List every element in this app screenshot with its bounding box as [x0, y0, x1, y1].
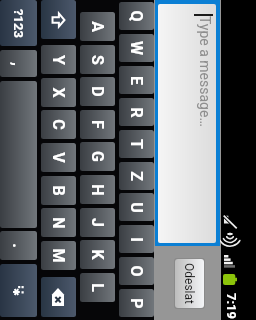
button[interactable]: Q [119, 2, 154, 30]
staticText: U [127, 202, 146, 213]
button[interactable]: F [80, 110, 115, 139]
staticText: Z [127, 171, 146, 181]
staticText: H [88, 184, 107, 196]
staticText: Type a message… [197, 16, 213, 127]
button[interactable]: G [80, 142, 115, 171]
button[interactable]: X [41, 78, 76, 107]
button[interactable]: O [119, 257, 154, 285]
staticText: P [127, 298, 146, 309]
staticText: L [88, 283, 107, 292]
button[interactable]: M [41, 241, 76, 270]
staticText: N [49, 217, 68, 229]
staticText: G [88, 151, 107, 162]
staticText: D [88, 86, 107, 97]
button[interactable]: W [119, 34, 154, 62]
button[interactable]: J [80, 208, 115, 237]
button[interactable]: I [119, 225, 154, 253]
staticText: Q [127, 10, 146, 22]
button[interactable]: , [0, 50, 37, 77]
button[interactable]: N [41, 208, 76, 237]
staticText: W [127, 41, 146, 55]
button[interactable]: H [80, 175, 115, 204]
button[interactable]: B [41, 176, 76, 205]
staticText: E [127, 76, 146, 85]
button[interactable]: ?123 [0, 0, 37, 46]
staticText: 7:19 [224, 293, 239, 320]
button[interactable]: D [80, 77, 115, 106]
button[interactable]: L [80, 273, 115, 302]
staticText: K [88, 249, 107, 260]
button[interactable]: V [41, 143, 76, 172]
button[interactable]: C [41, 110, 76, 139]
button[interactable]: U [119, 193, 154, 221]
button[interactable]: E [119, 66, 154, 94]
staticText: R [127, 107, 146, 118]
staticText: X [49, 87, 68, 98]
staticText: Odeslat [182, 263, 196, 304]
button[interactable]: Y [41, 45, 76, 74]
staticText: J [88, 218, 107, 227]
staticText: A [88, 21, 107, 32]
button[interactable]: Backspace [41, 277, 76, 317]
button[interactable]: . [0, 231, 37, 260]
button[interactable]: Shift [41, 0, 76, 39]
staticText: O [127, 265, 146, 277]
button[interactable]: A [80, 12, 115, 41]
staticText: M [49, 248, 68, 263]
staticText: , [9, 62, 28, 66]
staticText: B [49, 185, 68, 196]
button[interactable]: S [80, 45, 115, 74]
button[interactable]: Space [0, 81, 37, 228]
staticText: ?123 [11, 9, 26, 38]
staticText: C [49, 119, 68, 130]
staticText: I [127, 237, 146, 242]
button[interactable]: T [119, 130, 154, 158]
button[interactable]: Type a message… [155, 0, 220, 246]
staticText: T [127, 139, 146, 149]
button[interactable]: R [119, 98, 154, 126]
button[interactable]: Z [119, 162, 154, 190]
button[interactable]: Emoji [0, 264, 37, 317]
button[interactable]: K [80, 240, 115, 269]
staticText: . [9, 243, 28, 248]
staticText: S [88, 55, 107, 65]
button[interactable]: P [119, 289, 154, 317]
button[interactable]: Odeslat [174, 258, 205, 309]
staticText: F [88, 120, 107, 129]
staticText: V [49, 152, 68, 163]
staticText: Y [49, 55, 68, 65]
